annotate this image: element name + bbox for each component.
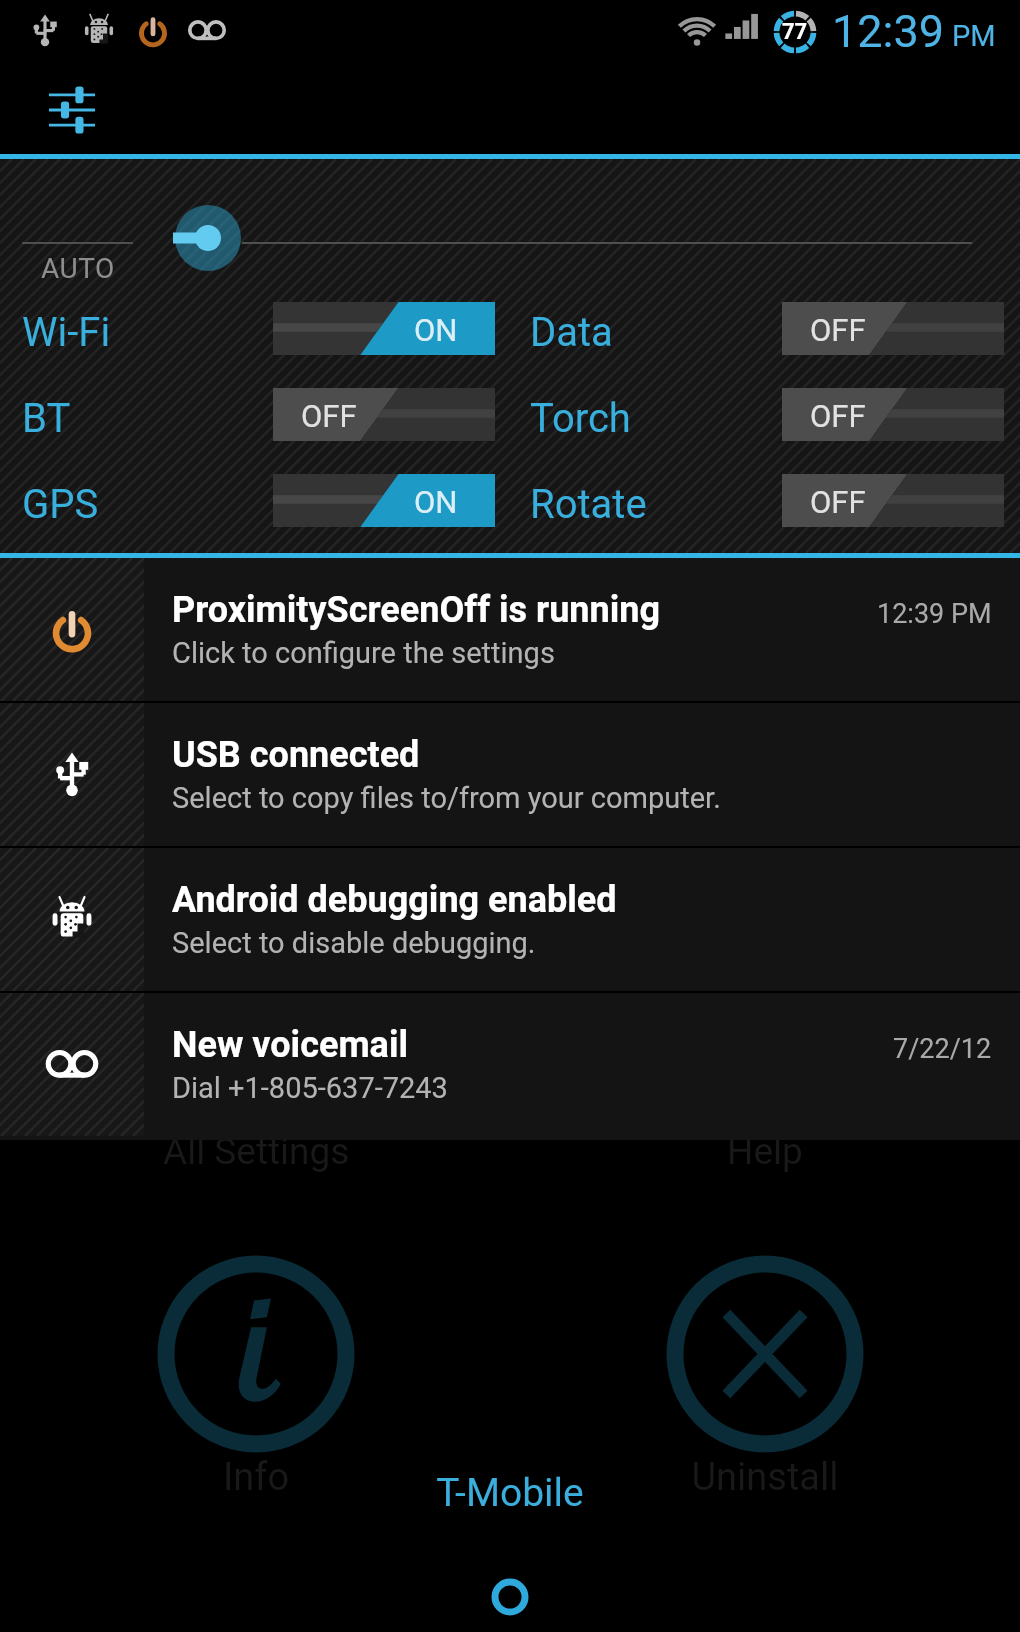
- staticText: 12:39 PM: [877, 598, 992, 630]
- staticText: Info: [157, 1455, 355, 1500]
- staticText: Rotate: [530, 481, 647, 528]
- staticText: Android debugging enabled: [172, 879, 617, 921]
- staticText: Dial +1-805-637-7243: [172, 1071, 448, 1105]
- staticText: Uninstall: [666, 1455, 864, 1500]
- button[interactable]: Uninstall: [666, 1255, 864, 1453]
- staticText: ON: [414, 312, 458, 348]
- staticText: ON: [414, 484, 458, 520]
- staticText: OFF: [810, 312, 866, 348]
- button[interactable]: ON: [273, 474, 495, 527]
- staticText: 12:39: [832, 5, 945, 58]
- button[interactable]: OFF: [782, 302, 1004, 355]
- button[interactable]: Quick settings: [48, 86, 96, 134]
- staticText: 7/22/12: [893, 1033, 992, 1065]
- button[interactable]: ProximityScreenOff is running: [0, 558, 1020, 701]
- staticText: Click to configure the settings: [172, 636, 555, 670]
- staticText: T-Mobile: [0, 1470, 1020, 1516]
- button[interactable]: Help: [727, 1130, 803, 1173]
- staticText: Torch: [530, 395, 631, 442]
- button[interactable]: OFF: [782, 474, 1004, 527]
- button[interactable]: Info: [157, 1255, 355, 1453]
- staticText: OFF: [810, 398, 866, 434]
- staticText: ProximityScreenOff is running: [172, 589, 660, 631]
- button[interactable]: Brightness: [175, 205, 241, 271]
- button[interactable]: New voicemail: [0, 993, 1020, 1136]
- staticText: OFF: [301, 398, 357, 434]
- staticText: PM: [952, 19, 996, 53]
- staticText: USB connected: [172, 734, 420, 776]
- staticText: New voicemail: [172, 1024, 408, 1066]
- staticText: Wi-Fi: [22, 309, 111, 356]
- button[interactable]: Home: [483, 1570, 537, 1624]
- button[interactable]: All Settings: [163, 1130, 350, 1173]
- staticText: Data: [530, 309, 613, 356]
- staticText: Select to disable debugging.: [172, 926, 536, 960]
- button[interactable]: Android debugging enabled: [0, 848, 1020, 991]
- button[interactable]: USB connected: [0, 703, 1020, 846]
- button[interactable]: ON: [273, 302, 495, 355]
- staticText: All Settings: [163, 1130, 350, 1173]
- staticText: Help: [727, 1130, 803, 1173]
- staticText: OFF: [810, 484, 866, 520]
- staticText: Select to copy files to/from your comput…: [172, 781, 721, 815]
- staticText: GPS: [22, 481, 99, 528]
- button[interactable]: OFF: [273, 388, 495, 441]
- staticText: BT: [22, 395, 71, 442]
- button[interactable]: OFF: [782, 388, 1004, 441]
- staticText: 77: [782, 19, 808, 45]
- staticText: AUTO: [41, 252, 115, 285]
